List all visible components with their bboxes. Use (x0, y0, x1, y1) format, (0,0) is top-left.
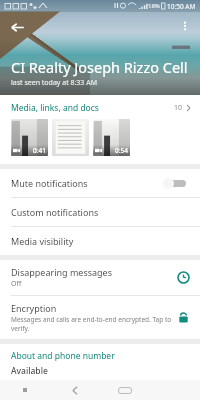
button[interactable]: Media, links, and docs (0, 95, 200, 117)
button[interactable]: Recents (0, 380, 50, 400)
button[interactable]: More options (174, 15, 196, 37)
button[interactable]: Back (50, 380, 100, 400)
staticText: 10:50 AM (167, 2, 196, 11)
staticText: 18% (148, 2, 160, 10)
button[interactable]: Back (5, 15, 29, 39)
button[interactable]: Mute notifications (0, 169, 200, 197)
staticText: About and phone number (11, 350, 115, 362)
button[interactable]: Video 0:41 (11, 119, 48, 156)
staticText: CI Realty Joseph Rizzo Cell (11, 57, 188, 77)
staticText: Encryption (11, 302, 57, 314)
button[interactable]: Document (52, 119, 89, 156)
button[interactable]: Video 0:54 (93, 119, 130, 156)
staticText: Off (11, 279, 22, 289)
staticText: Available (11, 365, 48, 374)
staticText: last seen today at 8:33 AM (11, 78, 98, 88)
staticText: Mute notifications (11, 177, 88, 189)
button[interactable]: Custom notifications (0, 198, 200, 226)
staticText: 10 (174, 103, 183, 113)
button[interactable]: Home (100, 380, 150, 400)
button[interactable]: Media visibility (0, 227, 200, 255)
staticText: Media, links, and docs (11, 102, 99, 114)
staticText: Custom notifications (11, 206, 99, 218)
button[interactable]: Encryption (0, 296, 200, 339)
staticText: 0:41 (33, 146, 46, 155)
button[interactable]: About and phone number (0, 344, 200, 380)
staticText: Media visibility (11, 235, 74, 247)
staticText: Messages and calls are end-to-end encryp… (11, 315, 178, 333)
staticText: 0:54 (115, 146, 128, 155)
button[interactable]: Disappearing messages (0, 260, 200, 295)
staticText: Disappearing messages (11, 266, 113, 278)
